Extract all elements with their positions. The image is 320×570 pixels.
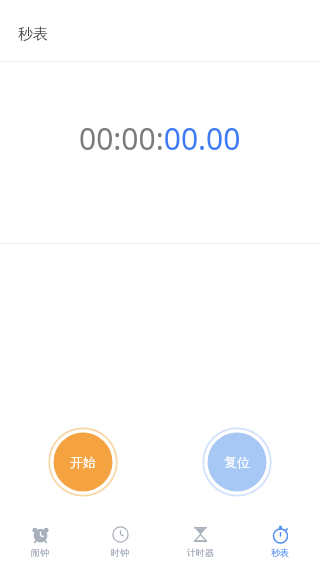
button[interactable]: 复位 <box>202 427 272 497</box>
staticText: 秒表 <box>18 25 48 44</box>
button[interactable]: 开始 <box>48 427 118 497</box>
staticText: 时钟 <box>111 547 129 558</box>
button[interactable]: 时钟 <box>80 523 160 558</box>
staticText: 秒表 <box>271 547 289 558</box>
staticText: 00:00:00.00 <box>79 118 241 159</box>
staticText: 开始 <box>70 454 96 470</box>
button[interactable]: 闹钟 <box>0 523 80 558</box>
button[interactable]: 计时器 <box>160 523 240 558</box>
staticText: 闹钟 <box>31 547 49 558</box>
button[interactable]: 秒表 <box>240 523 320 558</box>
staticText: 计时器 <box>187 547 214 558</box>
staticText: 复位 <box>224 454 250 470</box>
